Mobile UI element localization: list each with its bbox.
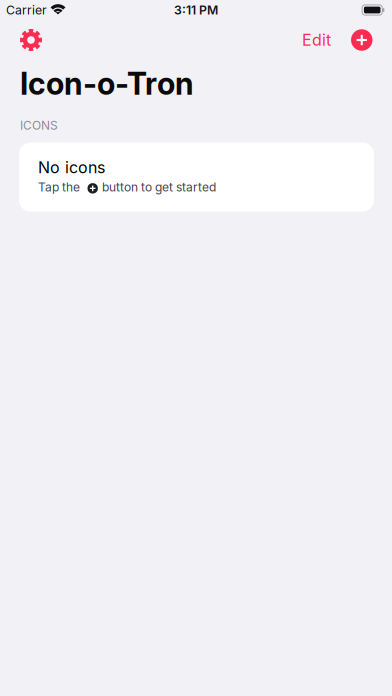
button[interactable]: Settings [0,20,54,60]
staticText: No icons [38,158,105,177]
staticText: Tap the [38,180,83,194]
staticText: button to get started [99,180,216,194]
button[interactable]: Add icon [341,20,392,60]
button[interactable]: Edit [292,21,341,59]
staticText: Icon-o-Tron [20,65,194,102]
staticText: 3:11 PM [174,3,218,17]
staticText: Carrier [6,3,47,17]
staticText: ICONS [20,118,58,133]
staticText: Edit [302,30,331,50]
